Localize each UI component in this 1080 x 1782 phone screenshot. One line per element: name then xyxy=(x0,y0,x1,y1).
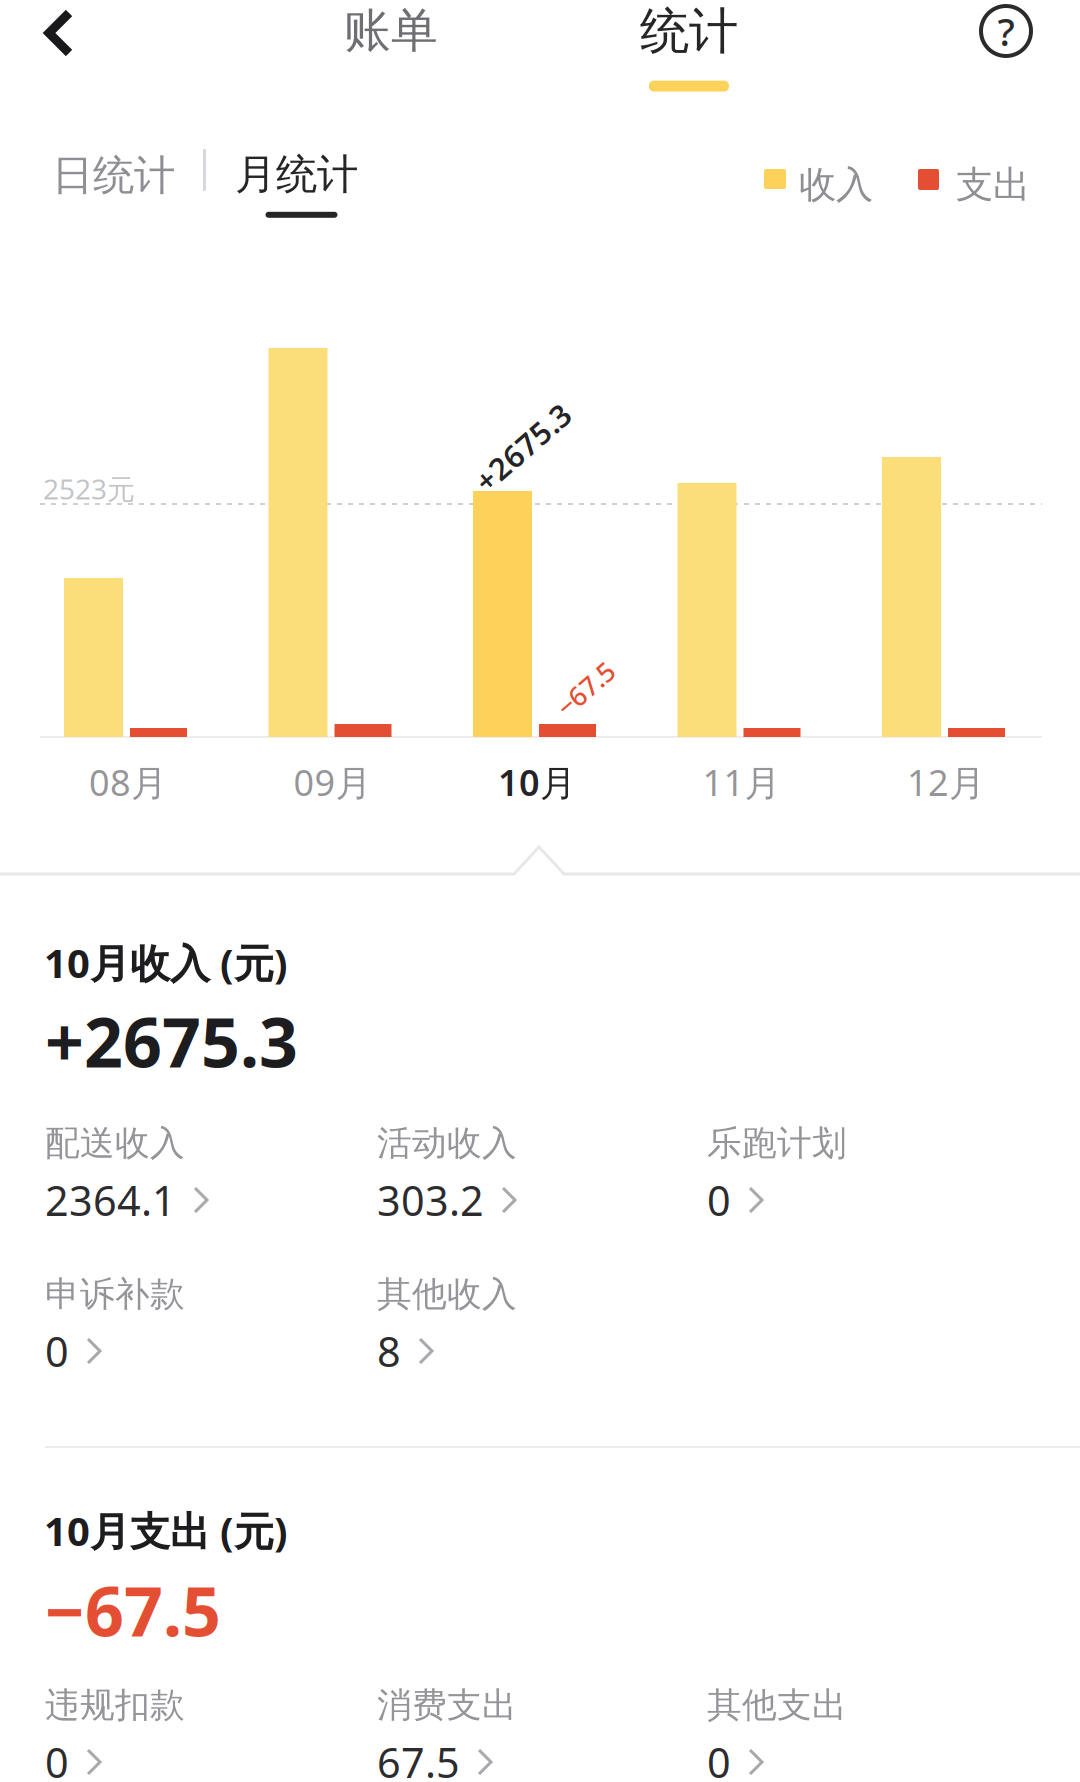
staticText: 违规扣款 xyxy=(45,1684,185,1727)
staticText: 12月 xyxy=(907,758,985,806)
staticText: 0 xyxy=(45,1735,69,1782)
staticText: 支出 xyxy=(956,162,1030,208)
staticText: 其他收入 xyxy=(377,1273,517,1316)
staticText: 收入 xyxy=(799,162,873,208)
staticText: 303.2 xyxy=(377,1173,484,1227)
button[interactable]: 10月 xyxy=(437,282,637,810)
staticText: 09月 xyxy=(293,758,371,806)
staticText: 申诉补款 xyxy=(45,1273,185,1316)
button[interactable]: 09月 xyxy=(232,282,432,810)
button[interactable]: 其他支出 xyxy=(707,1684,847,1782)
staticText: 10月收入 (元) xyxy=(44,936,288,989)
staticText: +2675.3 xyxy=(465,427,581,468)
staticText: 乐跑计划 xyxy=(707,1122,847,1165)
staticText: 日统计 xyxy=(52,150,175,201)
staticText: 0 xyxy=(707,1735,731,1782)
staticText: 08月 xyxy=(89,758,167,806)
button[interactable]: 统计 xyxy=(616,0,762,98)
button[interactable]: 配送收入 xyxy=(45,1122,210,1227)
staticText: 配送收入 xyxy=(45,1122,185,1165)
button[interactable]: 申诉补款 xyxy=(45,1273,185,1378)
button[interactable]: 月统计 xyxy=(206,141,358,222)
button[interactable]: 活动收入 xyxy=(377,1122,518,1227)
staticText: 11月 xyxy=(702,758,780,806)
button[interactable]: 消费支出 xyxy=(377,1684,517,1782)
button[interactable]: 12月 xyxy=(846,282,1046,810)
button[interactable]: 违规扣款 xyxy=(45,1684,185,1782)
staticText: 67.5 xyxy=(377,1735,460,1782)
staticText: 10月 xyxy=(498,758,576,806)
staticText: 2364.1 xyxy=(45,1173,176,1227)
staticText: 10月支出 (元) xyxy=(44,1504,288,1557)
staticText: 2523元 xyxy=(43,470,135,507)
button[interactable]: 账单 xyxy=(320,0,462,77)
button[interactable]: Help xyxy=(956,0,1056,81)
button[interactable]: 08月 xyxy=(28,282,228,810)
staticText: −67.5 xyxy=(552,671,619,706)
staticText: ? xyxy=(997,5,1014,57)
staticText: 活动收入 xyxy=(377,1122,517,1165)
button[interactable]: 11月 xyxy=(641,282,841,810)
staticText: 月统计 xyxy=(235,149,358,200)
staticText: 其他支出 xyxy=(707,1684,847,1727)
staticText: 0 xyxy=(707,1173,731,1227)
button[interactable]: 日统计 xyxy=(39,141,203,210)
button[interactable]: Back xyxy=(24,0,98,82)
button[interactable]: 其他收入 xyxy=(377,1273,517,1378)
staticText: 8 xyxy=(377,1324,401,1378)
staticText: 统计 xyxy=(640,1,738,62)
staticText: 账单 xyxy=(344,2,438,59)
staticText: −67.5 xyxy=(45,1565,221,1655)
staticText: 消费支出 xyxy=(377,1684,517,1727)
staticText: 0 xyxy=(45,1324,69,1378)
staticText: +2675.3 xyxy=(45,996,298,1086)
button[interactable]: 乐跑计划 xyxy=(707,1122,847,1227)
